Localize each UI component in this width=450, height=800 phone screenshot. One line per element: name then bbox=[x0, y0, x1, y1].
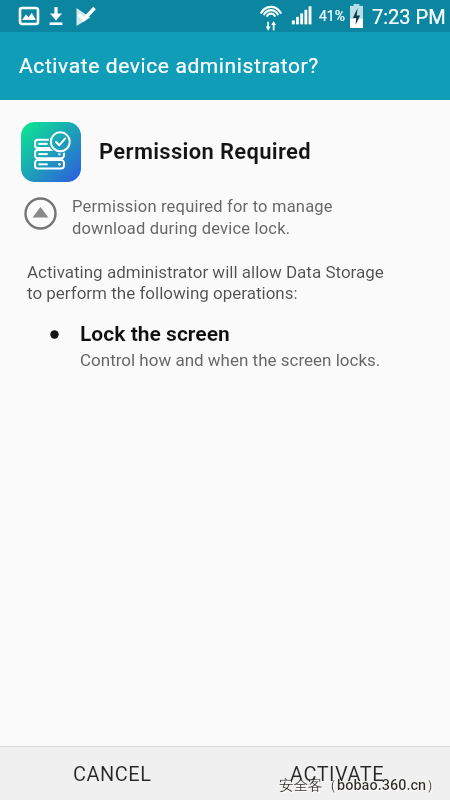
button[interactable]: ACTIVATE bbox=[225, 747, 450, 800]
staticText: 安全客（bobao.360.cn） bbox=[279, 776, 441, 794]
staticText: Permission Required bbox=[99, 139, 311, 165]
staticText: 7:23 PM bbox=[372, 5, 446, 28]
staticText: 41% bbox=[319, 8, 345, 24]
staticText: Permission required for to manage downlo… bbox=[72, 197, 333, 238]
staticText: CANCEL bbox=[73, 762, 152, 785]
staticText: Control how and when the screen locks. bbox=[80, 350, 381, 370]
staticText: Lock the screen bbox=[80, 322, 230, 347]
staticText: ACTIVATE bbox=[290, 762, 385, 785]
staticText: Activate device administrator? bbox=[19, 54, 319, 79]
button[interactable]: CANCEL bbox=[0, 747, 225, 800]
staticText: 安全客（bobao.360.cn） bbox=[280, 777, 442, 795]
staticText: Activating administrator will allow Data… bbox=[27, 262, 384, 303]
